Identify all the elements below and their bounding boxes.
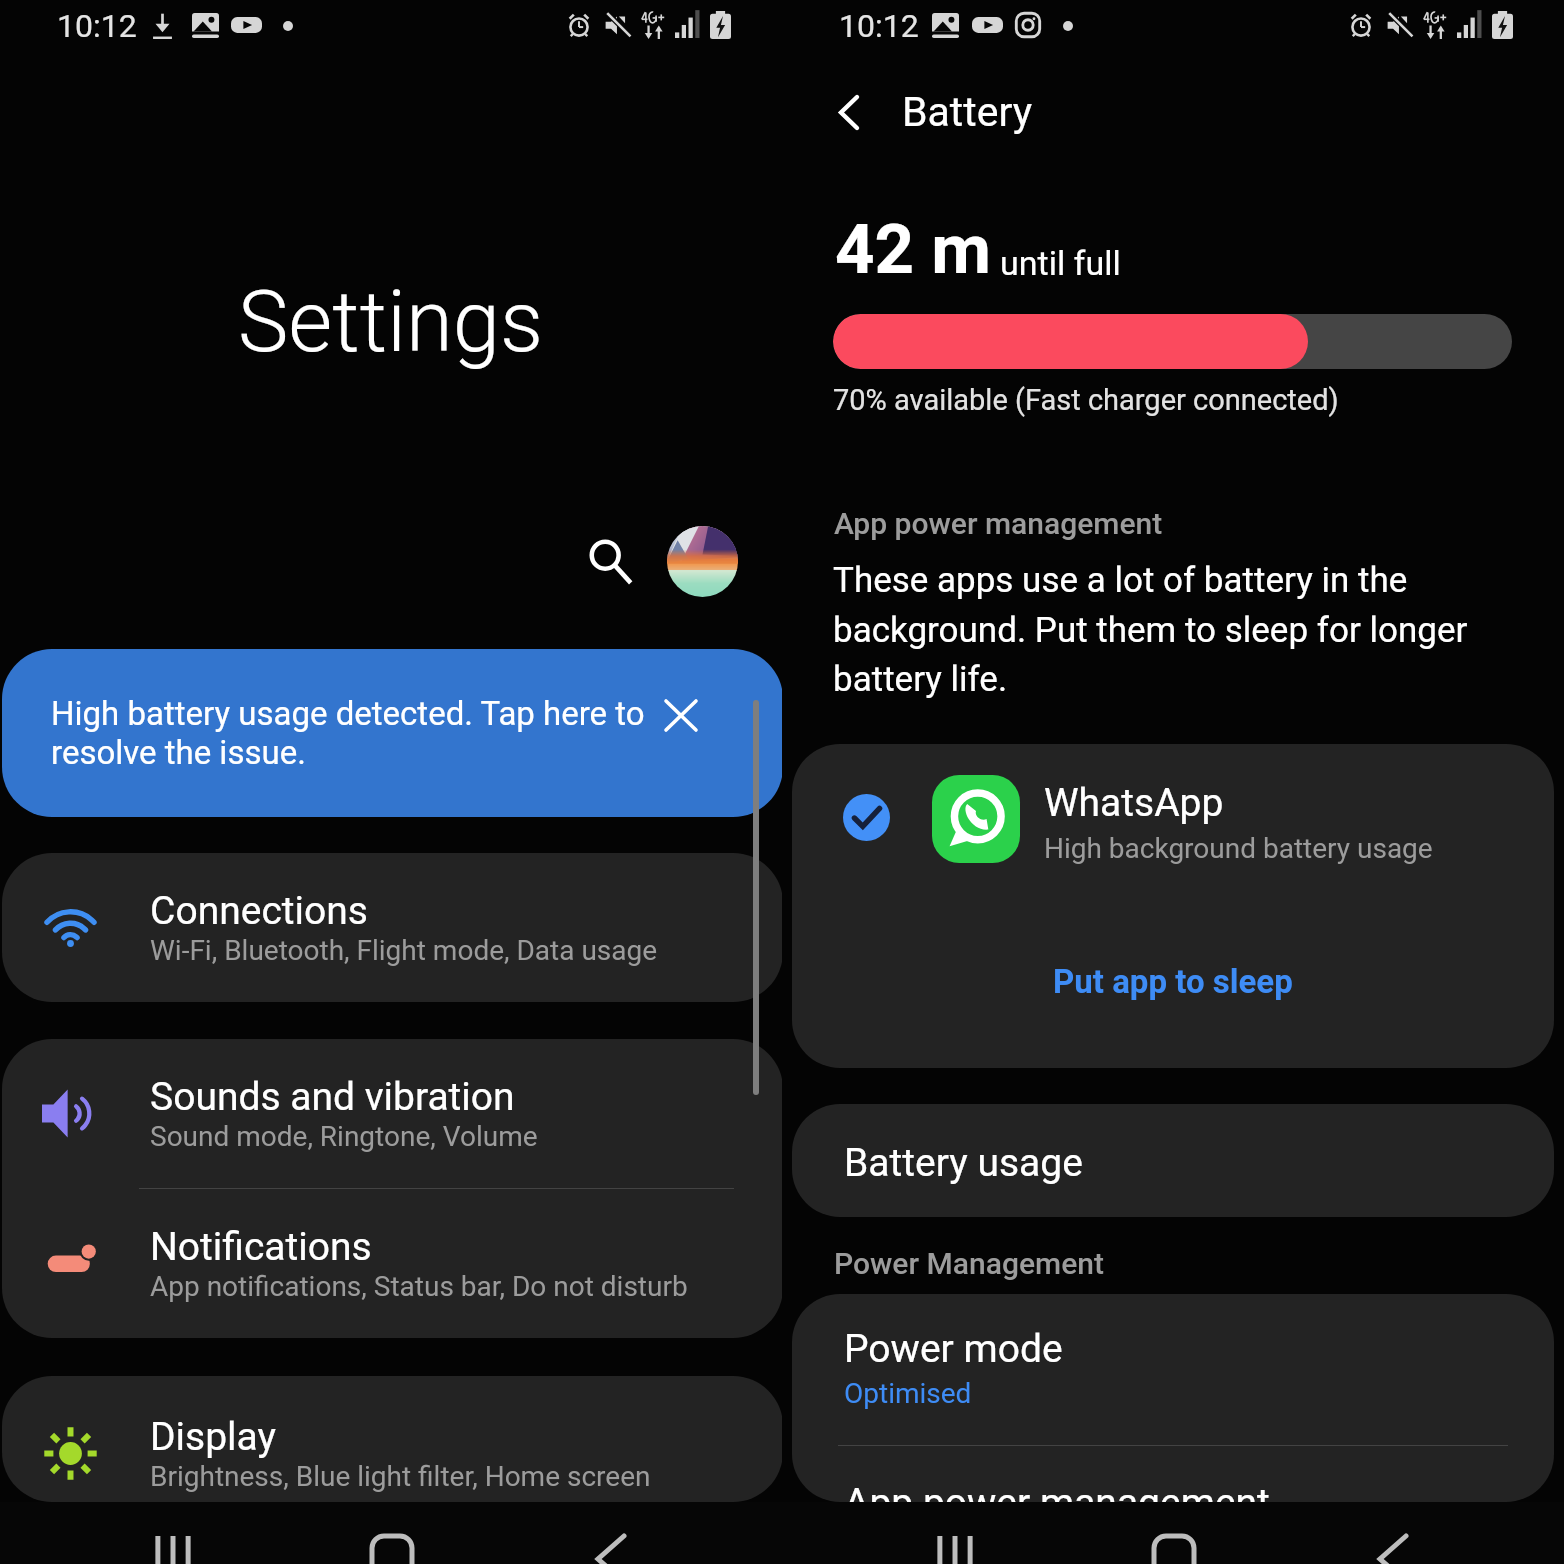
staticText: Power mode [844, 1326, 1063, 1372]
staticText: 10:12 [839, 7, 919, 45]
button[interactable]: Display [2, 1390, 783, 1502]
staticText: 70% available (Fast charger connected) [833, 383, 1339, 417]
button[interactable]: Battery usage [792, 1104, 1554, 1217]
staticText: Notifications [150, 1224, 372, 1270]
staticText: Connections [150, 888, 368, 934]
button[interactable]: Dismiss [653, 687, 709, 743]
staticText: High battery usage detected. Tap here to… [51, 694, 711, 772]
staticText: Brightness, Blue light filter, Home scre… [150, 1460, 651, 1493]
staticText: 10:12 [57, 7, 137, 45]
button[interactable]: Recents [155, 1536, 191, 1564]
button[interactable]: Back [1378, 1536, 1406, 1564]
staticText: App power management [844, 1480, 1270, 1502]
staticText: until full [1000, 243, 1121, 283]
staticText: Power Management [834, 1246, 1104, 1281]
staticText: Display [150, 1414, 276, 1460]
staticText: Battery usage [844, 1140, 1083, 1186]
staticText: These apps use a lot of battery in the b… [833, 560, 1483, 699]
button[interactable]: Recents [937, 1536, 973, 1564]
staticText: WhatsApp [1044, 780, 1224, 826]
staticText: Wi-Fi, Bluetooth, Flight mode, Data usag… [150, 934, 658, 967]
staticText: Sounds and vibration [150, 1074, 515, 1120]
staticText: App power management [834, 506, 1163, 541]
staticText: 42 m [835, 209, 992, 290]
button[interactable]: Home [1154, 1536, 1194, 1564]
button[interactable]: Search [576, 527, 644, 595]
staticText: Sound mode, Ringtone, Volume [150, 1120, 538, 1153]
button[interactable]: Profile [667, 526, 738, 597]
button[interactable]: Connections [2, 853, 783, 1002]
button[interactable]: Selected [843, 794, 890, 841]
button[interactable]: High battery usage detected. Tap here to… [2, 649, 783, 817]
staticText: Optimised [844, 1377, 972, 1410]
button[interactable]: Back [815, 78, 883, 146]
staticText: Settings [238, 272, 544, 372]
button[interactable]: Back [596, 1536, 624, 1564]
staticText: Put app to sleep [1053, 962, 1293, 1001]
button[interactable]: Put app to sleep [1033, 950, 1313, 1013]
button[interactable]: Notifications [2, 1189, 783, 1338]
staticText: High background battery usage [1044, 832, 1433, 865]
staticText: Battery [902, 88, 1033, 136]
staticText: App notifications, Status bar, Do not di… [150, 1270, 688, 1303]
button[interactable]: Home [372, 1536, 412, 1564]
button[interactable]: Power mode [792, 1294, 1554, 1445]
button[interactable]: Sounds and vibration [2, 1039, 783, 1188]
